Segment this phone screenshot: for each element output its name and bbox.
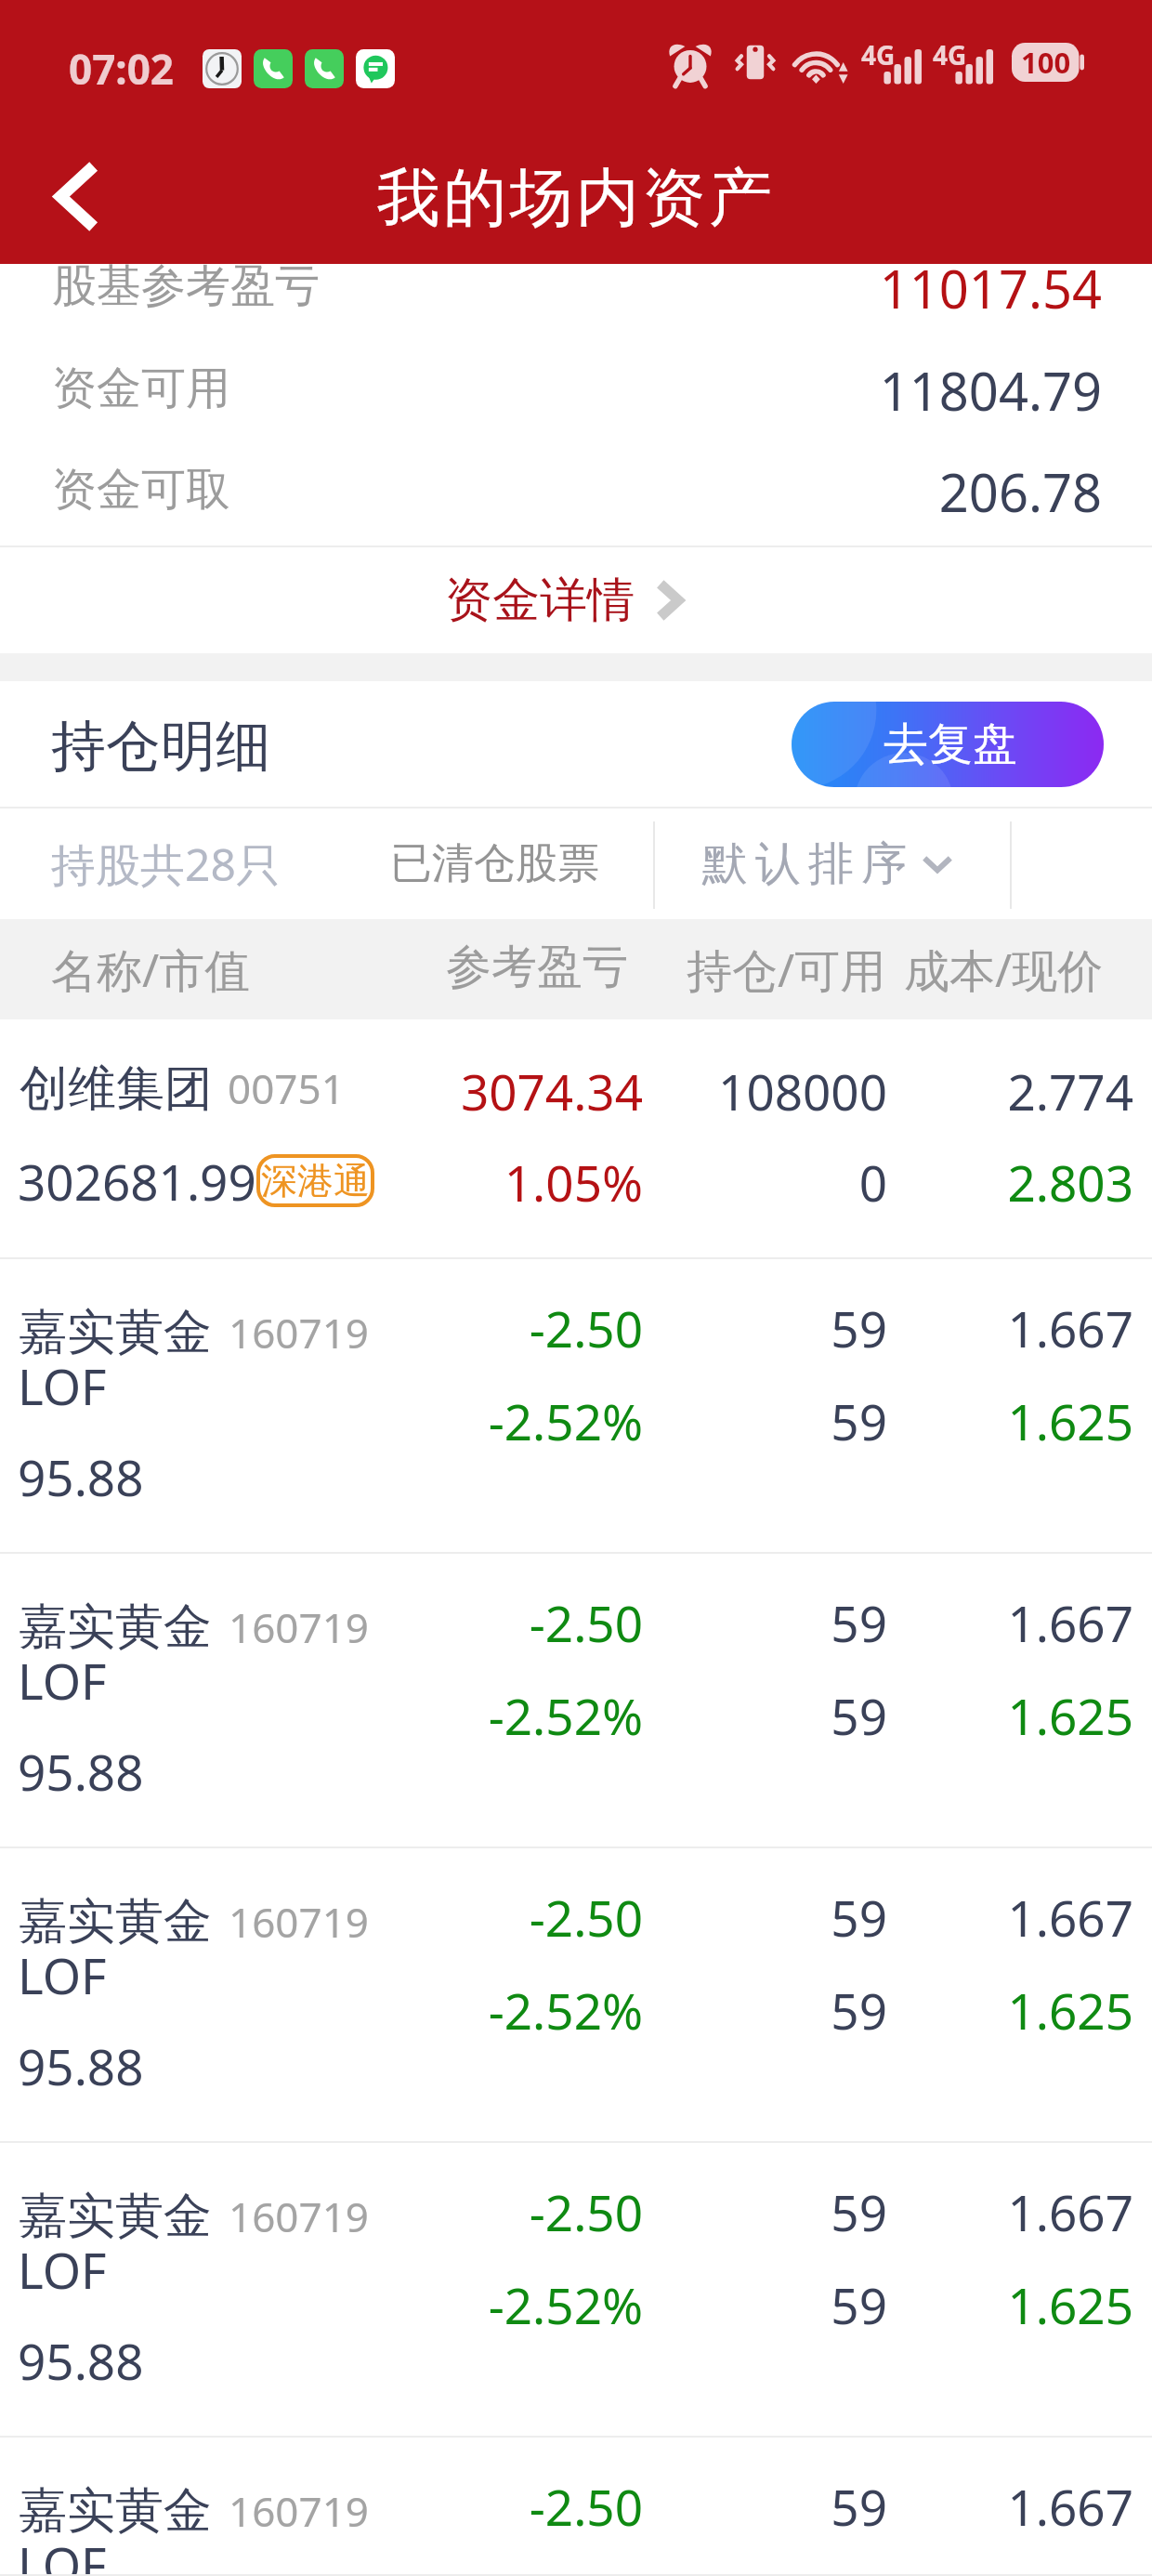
staticText: 1.667 <box>0 1295 1133 1361</box>
button[interactable]: 默认排序 <box>653 808 997 919</box>
staticText: -2.50 <box>0 2178 643 2245</box>
staticText: 4G <box>933 37 967 72</box>
staticText: 95.88 <box>18 2327 144 2394</box>
staticText: LOF <box>18 2530 107 2576</box>
staticText: 1.667 <box>0 1884 1133 1951</box>
staticText: 嘉实黄金 <box>19 2480 212 2542</box>
staticText: 1.667 <box>0 1589 1133 1656</box>
staticText: 成本/现价 <box>904 939 1104 1001</box>
staticText: 160719 <box>229 2483 370 2539</box>
staticText: 59 <box>0 2271 887 2338</box>
staticText: 0 <box>0 1149 887 1216</box>
staticText: 名称/市值 <box>51 939 251 1001</box>
staticText: 95.88 <box>18 1443 144 1510</box>
staticText: -2.50 <box>0 1884 643 1951</box>
staticText: 100 <box>1021 43 1071 82</box>
staticText: 59 <box>0 1589 887 1656</box>
staticText: 59 <box>0 1387 887 1454</box>
staticText: 160719 <box>229 2188 370 2244</box>
staticText: 资金可用 <box>52 361 230 416</box>
staticText: -2.50 <box>0 1589 643 1656</box>
staticText: 我的场内资产 <box>0 159 1152 239</box>
staticText: 1.667 <box>0 2473 1133 2540</box>
staticText: 1.625 <box>0 1387 1133 1454</box>
staticText: 206.78 <box>0 456 1102 527</box>
staticText: 59 <box>0 2473 887 2540</box>
staticText: 持仓/可用 <box>687 939 886 1001</box>
staticText: 默认排序 <box>699 835 910 893</box>
staticText: 2.774 <box>0 1058 1133 1124</box>
staticText: 1.625 <box>0 2566 1133 2576</box>
staticText: 2.803 <box>0 1149 1133 1216</box>
button[interactable]: Back <box>24 143 130 249</box>
staticText: LOF <box>18 1647 107 1714</box>
button[interactable]: 嘉实黄金 <box>0 2438 1152 2576</box>
staticText: 59 <box>0 1884 887 1951</box>
button[interactable]: 已清仓股票 <box>344 808 646 919</box>
staticText: 07:02 <box>69 41 175 97</box>
staticText: -2.50 <box>0 2473 643 2540</box>
button[interactable]: 创维集团 <box>0 1019 1152 1259</box>
staticText: 3074.34 <box>0 1058 643 1124</box>
staticText: 4G <box>861 37 896 72</box>
staticText: 1.625 <box>0 1977 1133 2044</box>
staticText: 嘉实黄金 <box>19 1597 212 1658</box>
button[interactable]: 嘉实黄金 <box>0 1554 1152 1848</box>
staticText: -2.52% <box>0 1682 643 1749</box>
staticText: 59 <box>0 2566 887 2576</box>
button[interactable]: 持股共28只 <box>0 808 331 919</box>
staticText: 已清仓股票 <box>390 837 599 890</box>
staticText: 1.667 <box>0 2178 1133 2245</box>
staticText: 嘉实黄金 <box>19 1302 212 1363</box>
staticText: 95.88 <box>18 1738 144 1805</box>
staticText: 95.88 <box>18 2032 144 2099</box>
staticText: 59 <box>0 2178 887 2245</box>
staticText: 1.05% <box>0 1149 643 1216</box>
staticText: 160719 <box>229 1305 370 1360</box>
staticText: 160719 <box>229 1599 370 1655</box>
staticText: 持仓明细 <box>51 712 270 781</box>
staticText: 302681.99 <box>18 1148 256 1215</box>
staticText: 00751 <box>228 1060 345 1116</box>
staticText: 1.625 <box>0 1682 1133 1749</box>
staticText: -2.50 <box>0 1295 643 1361</box>
staticText: 11017.54 <box>0 253 1102 323</box>
staticText: 嘉实黄金 <box>19 1891 212 1952</box>
staticText: 股基参考盈亏 <box>52 258 320 314</box>
staticText: -2.52% <box>0 2271 643 2338</box>
staticText: 1.625 <box>0 2271 1133 2338</box>
staticText: 参考盈亏 <box>446 939 628 996</box>
staticText: 嘉实黄金 <box>19 2186 212 2247</box>
staticText: 资金详情 <box>445 571 635 630</box>
button[interactable]: 嘉实黄金 <box>0 1848 1152 2143</box>
staticText: 去复盘 <box>884 716 1017 772</box>
staticText: 创维集团 <box>20 1058 213 1120</box>
staticText: 持股共28只 <box>51 834 281 895</box>
button[interactable]: 资金详情 <box>0 547 1152 653</box>
staticText: LOF <box>18 2236 107 2303</box>
staticText: -2.52% <box>0 1977 643 2044</box>
staticText: 59 <box>0 1682 887 1749</box>
staticText: 资金可取 <box>52 462 230 518</box>
staticText: LOF <box>18 1352 107 1419</box>
staticText: 160719 <box>229 1894 370 1950</box>
button[interactable]: 嘉实黄金 <box>0 2143 1152 2438</box>
staticText: -2.52% <box>0 1387 643 1454</box>
staticText: 59 <box>0 1977 887 2044</box>
staticText: 11804.79 <box>0 355 1102 426</box>
staticText: 108000 <box>0 1058 887 1124</box>
button[interactable]: 嘉实黄金 <box>0 1259 1152 1554</box>
staticText: 深港通 <box>261 1158 370 1203</box>
staticText: -2.52% <box>0 2566 643 2576</box>
staticText: LOF <box>18 1941 107 2008</box>
staticText: 59 <box>0 1295 887 1361</box>
button[interactable]: 去复盘 <box>792 702 1104 787</box>
